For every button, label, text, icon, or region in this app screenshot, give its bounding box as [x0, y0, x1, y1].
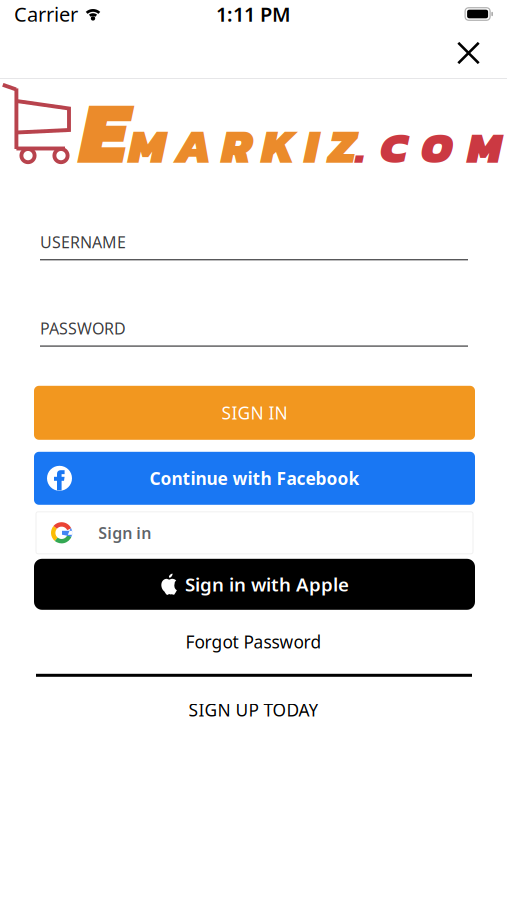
staticText: I — [304, 110, 319, 182]
staticText: Forgot Password — [185, 630, 321, 653]
staticText: R — [221, 110, 252, 182]
staticText: E — [79, 66, 128, 198]
staticText: K — [261, 110, 295, 182]
staticText: . — [356, 114, 366, 180]
staticText: Sign in with Apple — [185, 572, 349, 597]
button[interactable]: Sign in with Apple — [34, 559, 475, 610]
staticText: Sign in — [98, 522, 151, 543]
button[interactable]: Forgot Password — [36, 610, 471, 674]
staticText: Carrier — [14, 1, 78, 27]
staticText: 1:11 PM — [216, 1, 291, 27]
staticText: Z — [328, 110, 356, 182]
staticText: M — [467, 114, 502, 180]
staticText: O — [421, 114, 453, 180]
staticText: C — [380, 114, 407, 180]
staticText: USERNAME — [40, 231, 126, 253]
staticText: Continue with Facebook — [149, 467, 359, 490]
button[interactable]: SIGN UP TODAY — [36, 677, 471, 743]
button[interactable]: Sign in — [34, 512, 475, 554]
staticText: PASSWORD — [40, 318, 126, 339]
staticText: A — [175, 110, 212, 182]
staticText: SIGN UP TODAY — [188, 698, 318, 721]
staticText: SIGN IN — [221, 401, 287, 424]
button[interactable]: SIGN IN — [34, 386, 475, 440]
staticText: M — [128, 110, 166, 182]
button[interactable]: Continue with Facebook — [34, 452, 475, 505]
button[interactable]: Close — [449, 28, 488, 77]
